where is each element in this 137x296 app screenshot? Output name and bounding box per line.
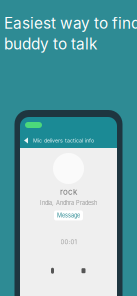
staticText: buddy to talk: [4, 35, 97, 53]
button[interactable]: Mute microphone: [48, 266, 56, 276]
staticText: India, Andhra Pradesh: [40, 200, 97, 206]
staticText: rock: [60, 187, 77, 197]
staticText: Message: [57, 212, 80, 219]
staticText: Mic delivers tactical info: [33, 137, 94, 144]
button[interactable]: Back: [23, 136, 29, 144]
button[interactable]: Message: [54, 210, 83, 220]
staticText: 00:01: [60, 238, 76, 246]
staticText: Easiest way to find: [4, 14, 137, 33]
button[interactable]: Speaker: [78, 266, 88, 276]
